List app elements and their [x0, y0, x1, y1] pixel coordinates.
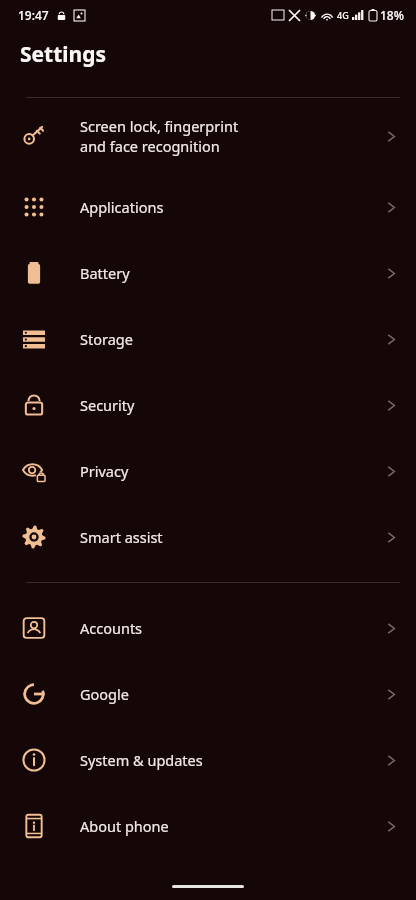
button[interactable]: Storage — [0, 306, 416, 372]
button[interactable]: Privacy — [0, 438, 416, 504]
button[interactable]: About phone — [0, 793, 416, 859]
staticText: Privacy — [80, 461, 385, 481]
staticText: 19:47 — [18, 7, 49, 23]
staticText: Applications — [80, 197, 385, 217]
staticText: Security — [80, 395, 385, 415]
button[interactable]: Security — [0, 372, 416, 438]
staticText: Screen lock, fingerprint and face recogn… — [80, 116, 385, 157]
button[interactable]: System & updates — [0, 727, 416, 793]
staticText: Google — [80, 684, 385, 704]
staticText: Smart assist — [80, 527, 385, 547]
staticText: 18% — [380, 7, 404, 23]
staticText: Storage — [80, 329, 385, 349]
button[interactable]: Applications — [0, 174, 416, 240]
button[interactable]: Accounts — [0, 595, 416, 661]
staticText: System & updates — [80, 750, 385, 770]
staticText: 4G — [337, 9, 349, 21]
staticText: Accounts — [80, 618, 385, 638]
staticText: Battery — [80, 263, 385, 283]
button[interactable]: Google — [0, 661, 416, 727]
button[interactable]: Screen lock, fingerprint and face recogn… — [0, 98, 416, 174]
button[interactable]: Smart assist — [0, 504, 416, 570]
staticText: Settings — [20, 40, 107, 69]
button[interactable]: Battery — [0, 240, 416, 306]
staticText: About phone — [80, 816, 385, 836]
